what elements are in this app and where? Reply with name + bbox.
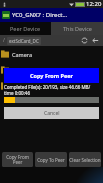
staticText: / — [3, 37, 5, 44]
button[interactable]: Copy From Peer — [2, 152, 33, 167]
staticText: This Device — [63, 25, 92, 32]
staticText: extSdCard_DC — [9, 38, 39, 44]
staticText: DCIM — [12, 67, 27, 74]
staticText: Copy From Peer — [2, 154, 33, 166]
staticText: Cancel — [44, 110, 60, 117]
staticText: Copy To Peer — [37, 157, 65, 163]
button[interactable]: DCIM — [0, 62, 103, 78]
button[interactable]: Camera — [0, 46, 103, 62]
button[interactable]: Cancel — [4, 107, 99, 119]
button[interactable]: Download — [0, 78, 103, 94]
button[interactable]: Clear Selection — [69, 152, 101, 167]
staticText: Clear Selection — [69, 157, 101, 163]
button[interactable]: Peer Device — [0, 22, 51, 35]
staticText: Copy From Peer — [30, 72, 73, 79]
button[interactable]: Copy To Peer — [35, 152, 67, 167]
button[interactable]: This Device — [51, 22, 103, 35]
staticText: 12:20 — [86, 0, 102, 8]
button[interactable]: Recent apps — [77, 167, 103, 183]
button[interactable]: extSdCard_DC — [7, 37, 41, 45]
staticText: Download — [12, 83, 39, 90]
staticText: time 0:00:46 — [4, 90, 30, 96]
button[interactable]: Back — [90, 35, 101, 46]
staticText: YC0_GNX7 : Direct... — [12, 11, 68, 19]
staticText: Completed File(s): 20/193, size 46.66 MB… — [4, 84, 99, 90]
staticText: Peer Device — [10, 25, 41, 32]
staticText: Camera — [12, 51, 33, 58]
button[interactable]: Refresh — [79, 35, 90, 46]
